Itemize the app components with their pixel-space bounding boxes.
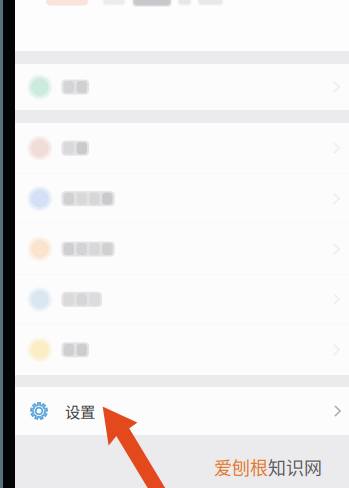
button[interactable]: List item bbox=[15, 64, 349, 110]
staticText: 知识网 bbox=[268, 454, 322, 480]
button[interactable]: List item bbox=[15, 173, 349, 224]
staticText: 设置 bbox=[65, 400, 95, 422]
button[interactable]: List item bbox=[15, 224, 349, 274]
button[interactable]: List item bbox=[15, 325, 349, 375]
button[interactable]: List item bbox=[15, 123, 349, 173]
button[interactable]: List item bbox=[15, 274, 349, 325]
button[interactable]: 设置 bbox=[15, 387, 349, 435]
staticText: 爱刨根 bbox=[214, 454, 268, 480]
